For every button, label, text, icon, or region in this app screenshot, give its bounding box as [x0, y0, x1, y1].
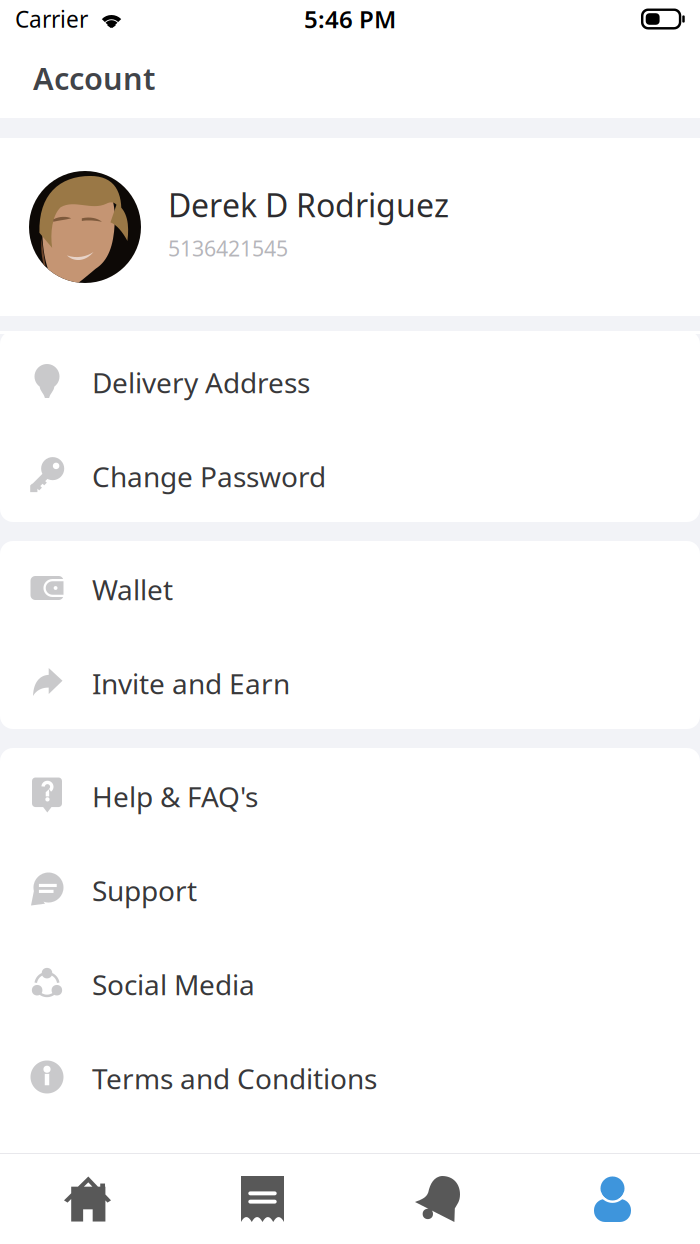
button[interactable]: Home	[0, 1154, 175, 1244]
button[interactable]: Change Password	[0, 428, 700, 522]
button[interactable]: Invite and Earn	[0, 635, 700, 729]
button[interactable]: Orders	[175, 1154, 350, 1244]
button[interactable]: Wallet	[0, 541, 700, 635]
staticText: Wallet	[92, 571, 173, 608]
staticText: Carrier	[15, 4, 88, 34]
button[interactable]: Social Media	[0, 936, 700, 1030]
staticText: Help & FAQ's	[92, 778, 258, 815]
staticText: Support	[92, 872, 197, 909]
staticText: Derek D Rodriguez	[168, 184, 449, 226]
staticText: Social Media	[92, 966, 255, 1003]
button[interactable]: Help & FAQ's	[0, 748, 700, 842]
staticText: Terms and Conditions	[92, 1060, 377, 1097]
staticText: 5:46 PM	[304, 3, 396, 35]
button[interactable]: Account	[525, 1154, 700, 1244]
staticText: Invite and Earn	[92, 665, 290, 702]
button[interactable]: Support	[0, 842, 700, 936]
staticText: Change Password	[92, 458, 326, 495]
button[interactable]: Terms and Conditions	[0, 1030, 700, 1124]
button[interactable]: Notifications	[350, 1154, 525, 1244]
button[interactable]: Delivery Address	[0, 334, 700, 428]
staticText: 5136421545	[168, 234, 288, 262]
staticText: Delivery Address	[92, 364, 310, 401]
staticText: Account	[33, 58, 155, 98]
